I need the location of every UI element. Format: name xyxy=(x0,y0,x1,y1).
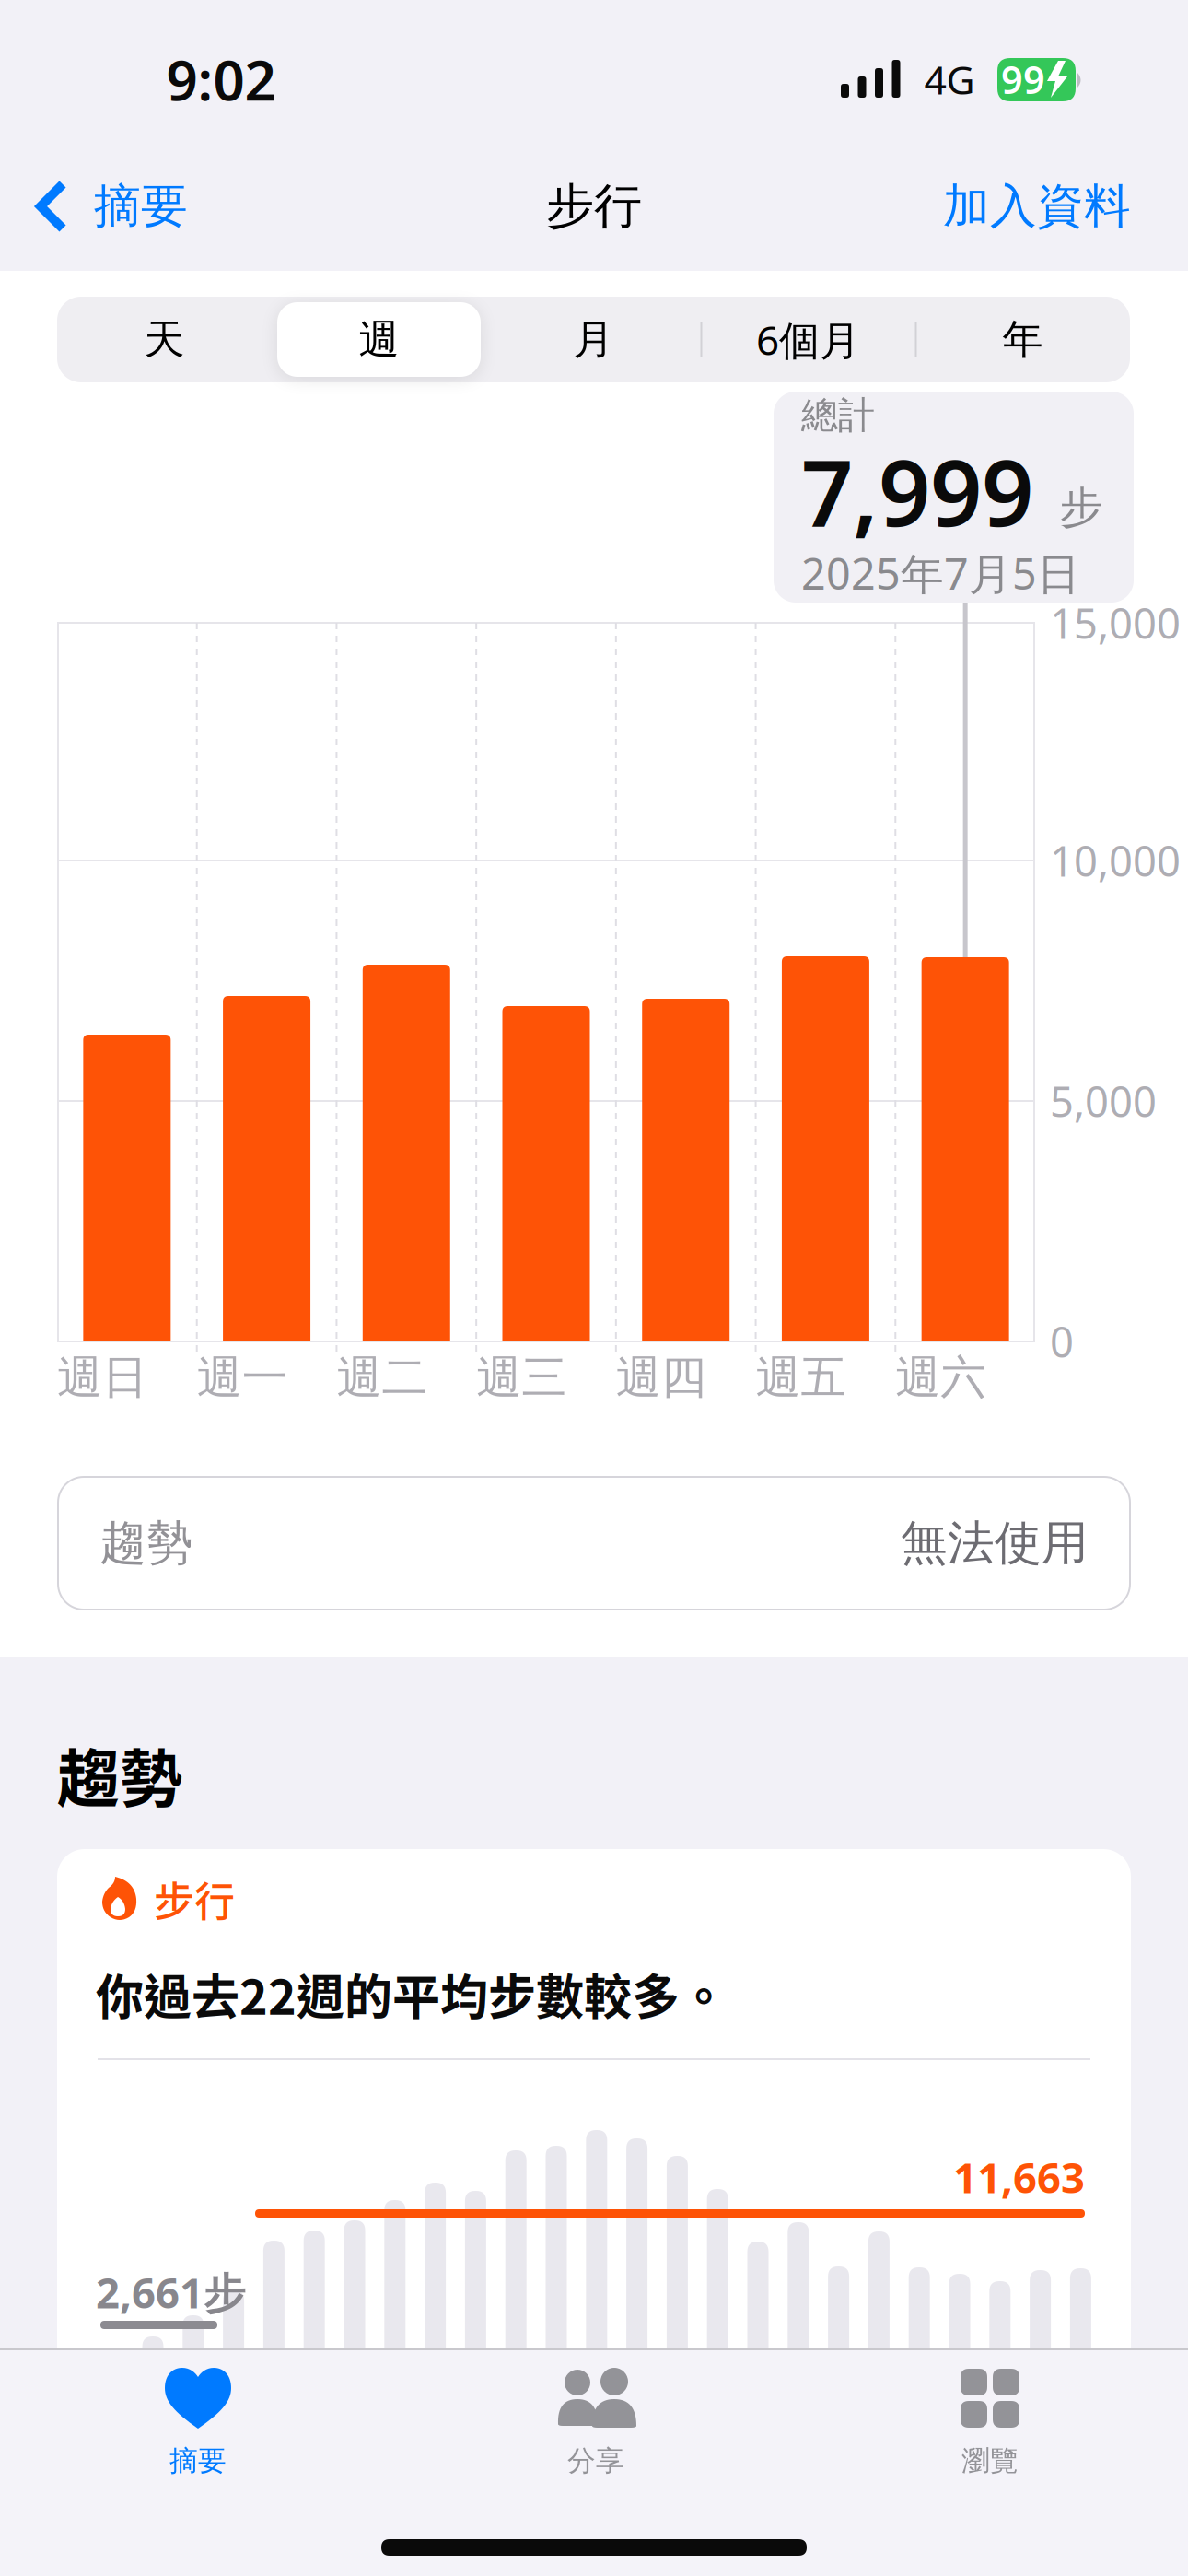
staticText: 步行 xyxy=(154,1869,235,1928)
button[interactable]: 月 xyxy=(486,297,701,382)
staticText: 7,999 xyxy=(801,431,1033,551)
staticText: 你過去22週的平均步數較多。 xyxy=(96,1959,728,2028)
button[interactable]: 摘要 xyxy=(99,2348,297,2496)
staticText: 5,000 xyxy=(1050,1073,1157,1129)
staticText: 無法使用 xyxy=(901,1515,1089,1572)
staticText: 摘要 xyxy=(94,178,188,235)
staticText: 加入資料 xyxy=(943,178,1131,235)
staticText: 週二 xyxy=(337,1349,427,1405)
staticText: 天 xyxy=(144,315,185,364)
staticText: 4G xyxy=(924,53,975,105)
staticText: 週六 xyxy=(895,1349,986,1405)
staticText: 11,663 xyxy=(953,2149,1085,2205)
staticText: 2,661步 xyxy=(96,2265,245,2320)
button[interactable]: 瀏覽 xyxy=(891,2348,1089,2496)
staticText: 週五 xyxy=(756,1349,846,1405)
button[interactable]: 年 xyxy=(915,297,1130,382)
staticText: 分享 xyxy=(567,2444,624,2478)
button[interactable]: 天 xyxy=(57,297,272,382)
staticText: 0 xyxy=(1050,1314,1074,1369)
staticText: 趨勢 xyxy=(99,1515,193,1572)
staticText: 月 xyxy=(573,315,614,364)
staticText: 步 xyxy=(1060,481,1103,534)
staticText: 9:02 xyxy=(166,43,276,116)
button[interactable]: 摘要 xyxy=(35,165,274,248)
staticText: 99 xyxy=(1001,54,1045,105)
staticText: 年 xyxy=(1002,315,1043,364)
button[interactable]: 加入資料 xyxy=(855,165,1131,248)
staticText: 2025年7月5日 xyxy=(801,544,1080,602)
staticText: 總計 xyxy=(801,393,875,438)
staticText: 6個月 xyxy=(756,313,860,366)
button[interactable]: 6個月 xyxy=(701,297,915,382)
staticText: 趨勢 xyxy=(57,1729,182,1820)
staticText: 步行 xyxy=(546,177,642,236)
staticText: 瀏覽 xyxy=(961,2444,1019,2478)
button[interactable]: 分享 xyxy=(496,2348,695,2496)
staticText: 15,000 xyxy=(1050,595,1181,651)
staticText: 週三 xyxy=(476,1349,566,1405)
button[interactable]: 趨勢 xyxy=(57,1476,1131,1610)
button[interactable]: 週 xyxy=(272,297,486,382)
staticText: 摘要 xyxy=(169,2444,227,2478)
staticText: 週四 xyxy=(616,1349,706,1405)
staticText: 週日 xyxy=(57,1349,147,1405)
staticText: 週一 xyxy=(197,1349,287,1405)
staticText: 週 xyxy=(359,315,399,364)
staticText: 10,000 xyxy=(1050,833,1181,888)
